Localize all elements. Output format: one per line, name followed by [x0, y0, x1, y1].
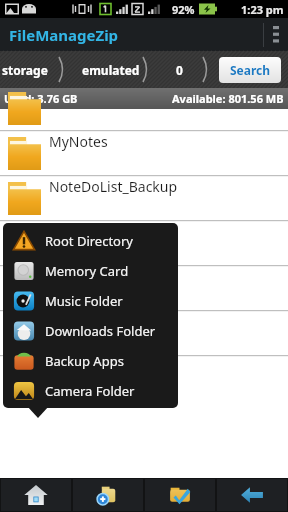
staticText: Music Folder: [45, 292, 123, 310]
button[interactable]: Home: [1, 479, 71, 511]
staticText: Memory Card: [45, 262, 129, 280]
staticText: Available: 801.56 MB: [172, 91, 284, 106]
staticText: storage: [2, 62, 48, 78]
button[interactable]: Notifications: [0, 209, 288, 254]
staticText: Notifications: [49, 222, 133, 241]
button[interactable]: Memory Card: [3, 256, 178, 286]
staticText: NoteDoList_Backup: [49, 177, 178, 196]
button[interactable]: Release Notes: [0, 299, 288, 344]
button[interactable]: Ringtones: [0, 344, 288, 389]
button[interactable]: Search: [219, 57, 281, 83]
staticText: Ringtones: [49, 357, 116, 376]
button[interactable]: Back: [217, 479, 287, 511]
staticText: Downloads Folder: [45, 322, 156, 340]
button[interactable]: Select: [145, 479, 215, 511]
button[interactable]: Music Folder: [3, 286, 178, 316]
staticText: 1:23 pm: [241, 2, 284, 17]
button[interactable]: More options: [264, 18, 288, 51]
button[interactable]: MyNotes: [0, 119, 288, 164]
button[interactable]: Root Directory: [3, 226, 178, 256]
button[interactable]: New folder: [73, 479, 143, 511]
staticText: Used: 3.76 GB: [4, 91, 78, 106]
staticText: Backup Apps: [45, 352, 124, 370]
staticText: MyNotes: [49, 132, 108, 151]
staticText: emulated: [82, 62, 140, 78]
staticText: Search: [230, 62, 271, 78]
staticText: Release Notes: [49, 312, 142, 331]
button[interactable]: Camera Folder: [3, 376, 178, 406]
button[interactable]: Pictures: [0, 254, 288, 299]
staticText: 92%: [172, 2, 195, 17]
button[interactable]: NoteDoList_Backup: [0, 164, 288, 209]
staticText: Camera Folder: [45, 382, 135, 400]
staticText: 0: [176, 62, 183, 78]
staticText: Pictures: [49, 267, 102, 286]
button[interactable]: Backup Apps: [3, 346, 178, 376]
staticText: Root Directory: [45, 232, 133, 250]
button[interactable]: Downloads Folder: [3, 316, 178, 346]
staticText: FileManageZip: [9, 25, 119, 45]
